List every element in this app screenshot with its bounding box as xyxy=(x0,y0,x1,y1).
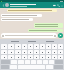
button[interactable] xyxy=(1,50,7,54)
button[interactable] xyxy=(22,55,27,59)
button[interactable] xyxy=(28,55,33,59)
button[interactable]: Contact avatar xyxy=(5,3,9,7)
button[interactable]: Call xyxy=(56,3,60,7)
button[interactable]: Video call xyxy=(52,3,56,7)
button[interactable] xyxy=(1,14,42,17)
button[interactable] xyxy=(15,55,21,59)
button[interactable] xyxy=(1,55,7,59)
button[interactable] xyxy=(34,50,39,54)
button[interactable] xyxy=(58,50,63,54)
button[interactable] xyxy=(1,18,33,21)
button[interactable] xyxy=(15,44,21,49)
button[interactable] xyxy=(46,44,51,49)
button[interactable] xyxy=(58,44,63,49)
button[interactable]: Send xyxy=(58,33,63,38)
button[interactable] xyxy=(52,44,57,49)
button[interactable] xyxy=(28,50,33,54)
button[interactable] xyxy=(40,55,45,59)
button[interactable] xyxy=(22,50,27,54)
button[interactable] xyxy=(8,44,14,49)
button[interactable] xyxy=(8,50,14,54)
button[interactable] xyxy=(7,9,57,12)
button[interactable] xyxy=(8,55,14,59)
button[interactable] xyxy=(1,33,57,38)
button[interactable] xyxy=(40,50,45,54)
button[interactable] xyxy=(10,4,52,7)
button[interactable] xyxy=(52,55,57,59)
button[interactable] xyxy=(58,55,63,59)
button[interactable] xyxy=(46,55,51,59)
button[interactable] xyxy=(34,55,39,59)
button[interactable] xyxy=(34,44,39,49)
button[interactable]: More options xyxy=(60,4,63,7)
button[interactable] xyxy=(40,44,45,49)
button[interactable] xyxy=(52,50,57,54)
button[interactable] xyxy=(28,29,63,32)
button[interactable] xyxy=(15,50,21,54)
button[interactable] xyxy=(28,44,33,49)
button[interactable] xyxy=(22,44,27,49)
button[interactable] xyxy=(34,23,63,28)
button[interactable]: Back xyxy=(1,3,5,7)
button[interactable] xyxy=(46,50,51,54)
button[interactable] xyxy=(1,44,7,49)
